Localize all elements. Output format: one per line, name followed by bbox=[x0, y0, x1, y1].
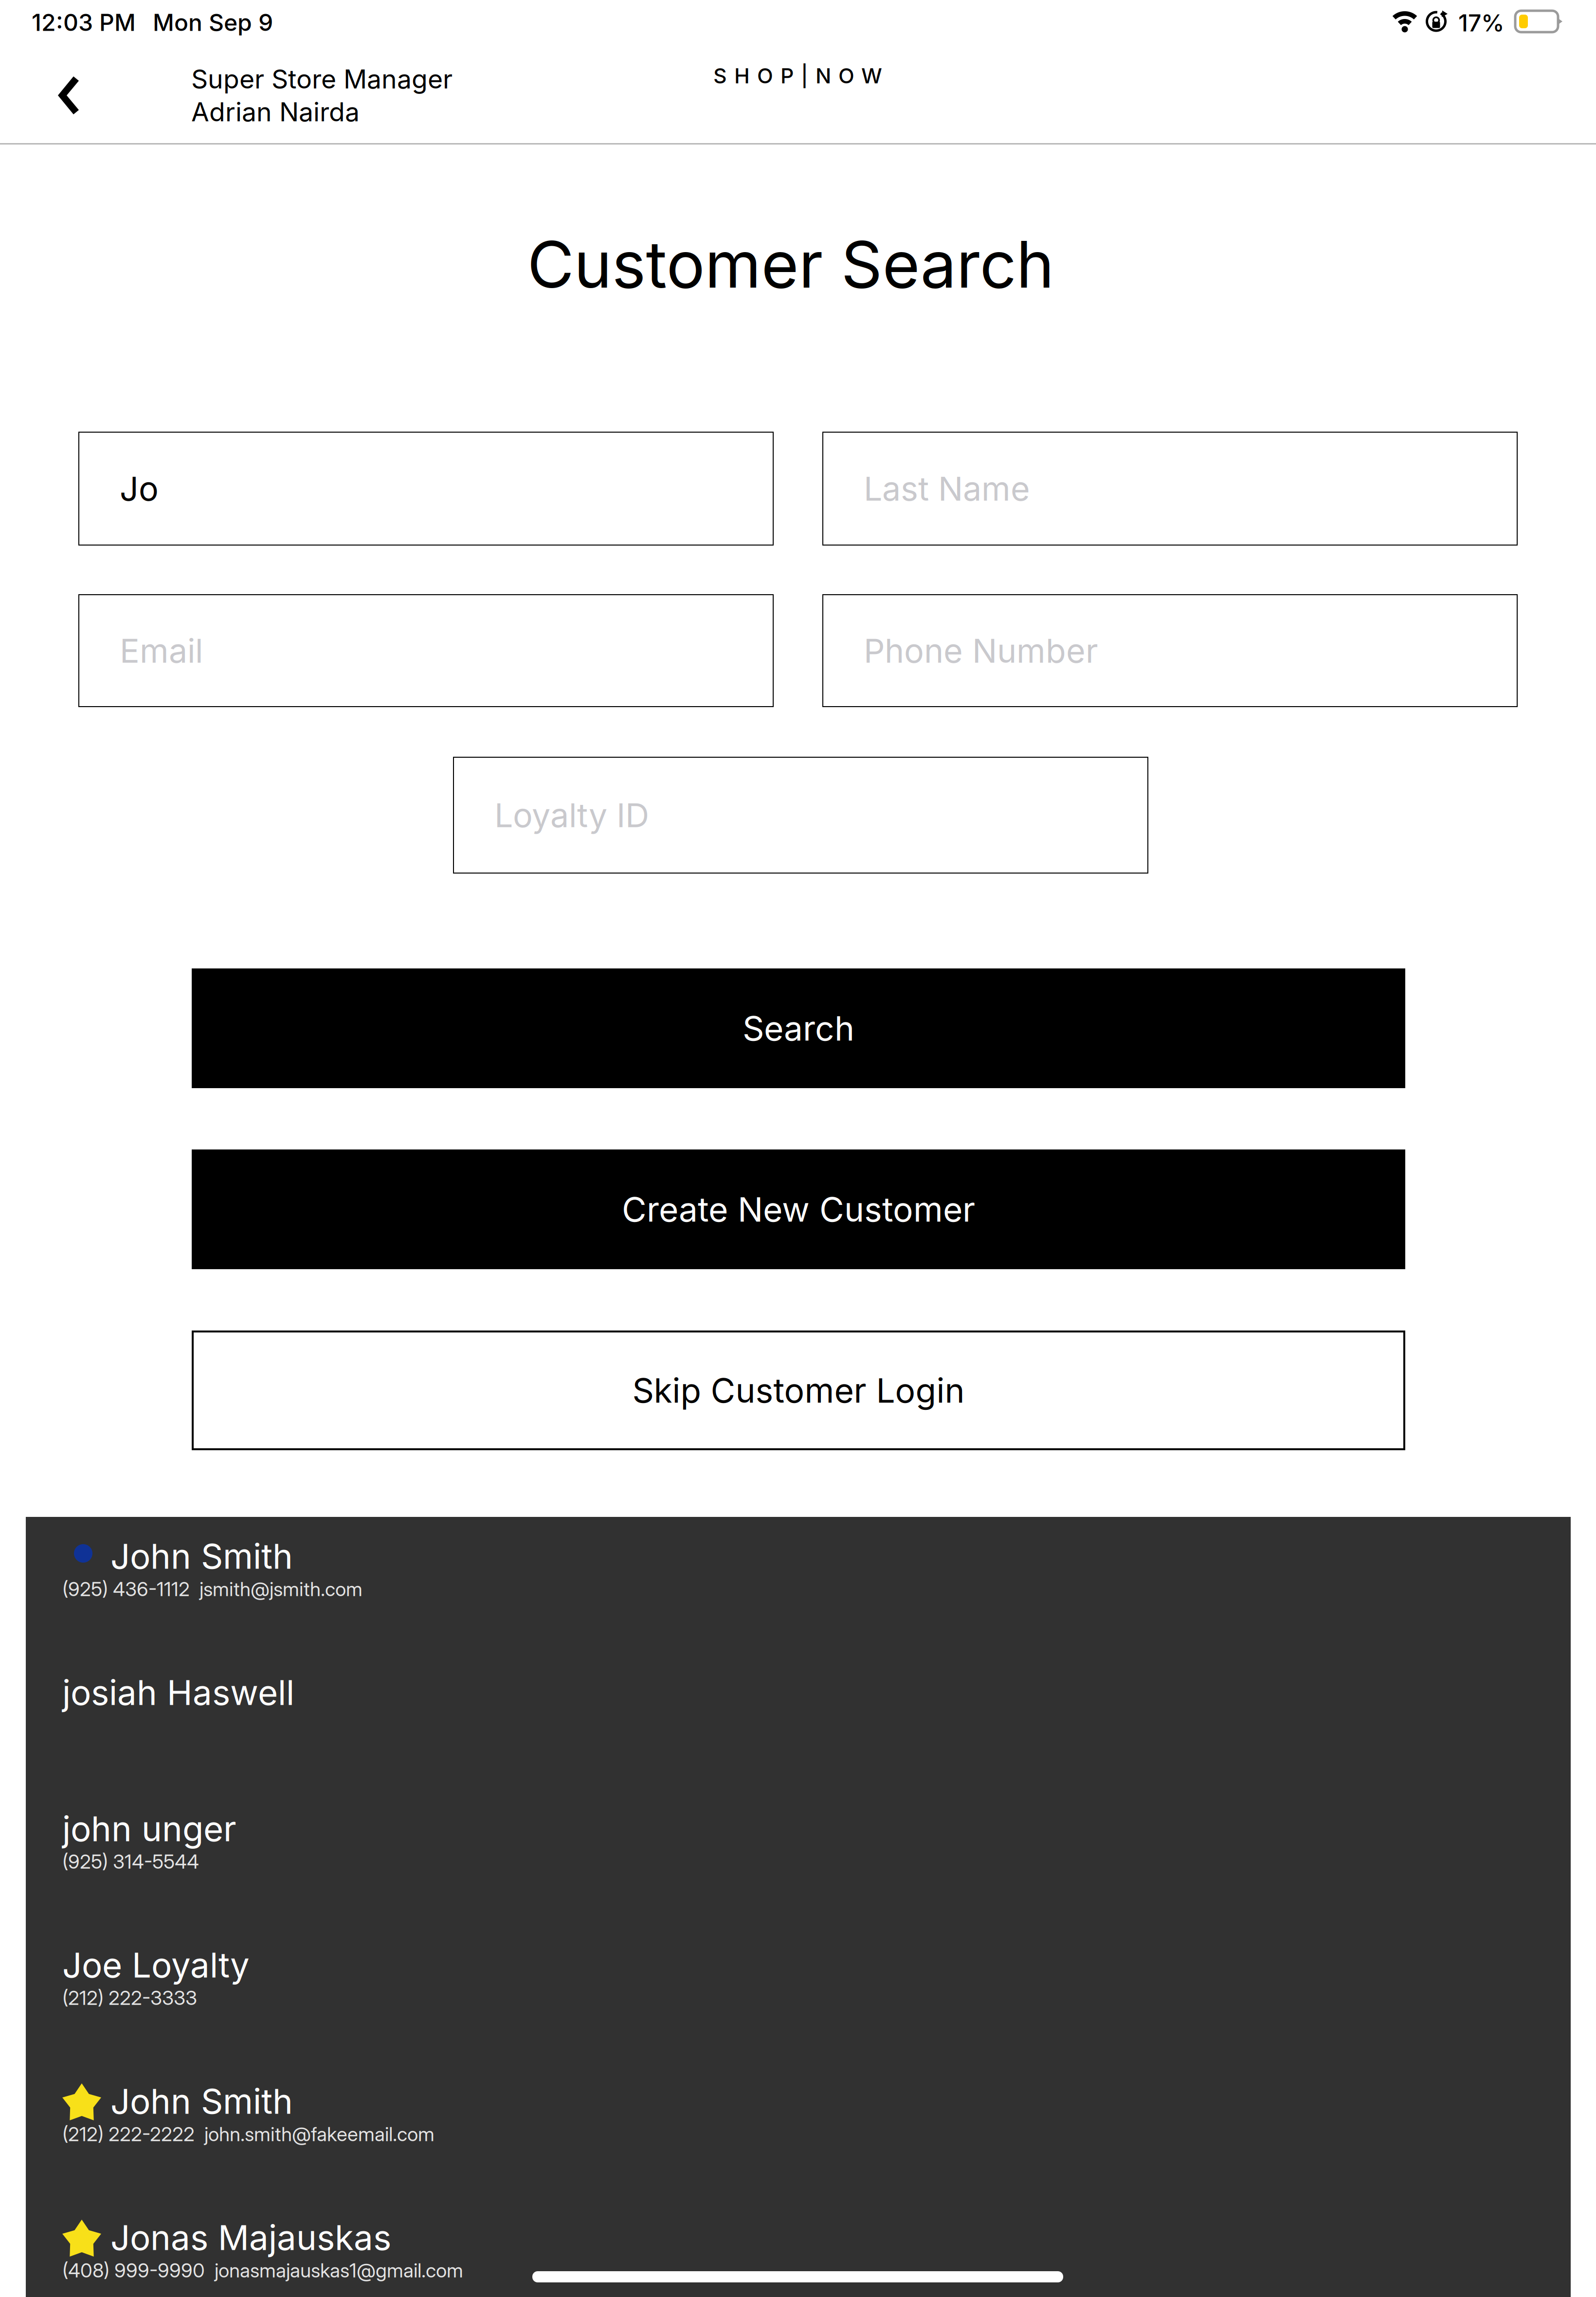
staticText: (925) 314-5544 bbox=[62, 1850, 199, 1873]
button[interactable]: john unger bbox=[26, 1808, 1571, 1944]
button[interactable]: Last Name bbox=[823, 432, 1517, 545]
staticText: Customer Search bbox=[527, 225, 1054, 303]
staticText: 17% bbox=[1458, 9, 1505, 37]
staticText: John Smith bbox=[110, 1535, 293, 1577]
staticText: Jonas Majauskas bbox=[110, 2217, 391, 2258]
button[interactable]: Loyalty ID bbox=[453, 757, 1148, 873]
staticText: 12:03 PM bbox=[32, 8, 136, 37]
staticText: SHOP|NOW bbox=[713, 63, 882, 88]
button[interactable]: Joe Loyalty bbox=[26, 1944, 1571, 2080]
button[interactable]: Search bbox=[192, 968, 1405, 1088]
staticText: Phone Number bbox=[864, 631, 1098, 671]
staticText: josiah Haswell bbox=[62, 1672, 294, 1713]
staticText: Search bbox=[743, 1008, 854, 1049]
staticText: Jo bbox=[120, 469, 159, 509]
staticText: john unger bbox=[62, 1808, 236, 1850]
staticText: Last Name bbox=[864, 469, 1030, 509]
button[interactable]: Email bbox=[79, 595, 773, 707]
staticText: Joe Loyalty bbox=[62, 1944, 250, 1986]
staticText: Loyalty ID bbox=[494, 795, 649, 835]
staticText: Super Store Manager bbox=[191, 63, 453, 95]
staticText: Create New Customer bbox=[622, 1189, 975, 1230]
staticText: (925) 436-1112 jsmith@jsmith.com bbox=[62, 1577, 363, 1601]
button[interactable]: Skip Customer Login bbox=[193, 1331, 1404, 1449]
button[interactable]: Back bbox=[58, 76, 79, 114]
button[interactable]: John Smith bbox=[26, 2080, 1571, 2217]
staticText: (212) 222-3333 bbox=[62, 1986, 197, 2010]
button[interactable]: Super Store Manager bbox=[191, 63, 453, 128]
staticText: (408) 999-9990 jonasmajauskas1@gmail.com bbox=[62, 2259, 463, 2282]
staticText: Skip Customer Login bbox=[632, 1370, 965, 1411]
staticText: Email bbox=[120, 631, 203, 671]
button[interactable]: Create New Customer bbox=[192, 1149, 1405, 1269]
staticText: Mon Sep 9 bbox=[153, 8, 273, 37]
staticText: (212) 222-2222 john.smith@fakeemail.com bbox=[62, 2122, 435, 2146]
button[interactable]: Phone Number bbox=[823, 595, 1517, 707]
button[interactable]: Jonas Majauskas bbox=[26, 2217, 1571, 2297]
button[interactable]: josiah Haswell bbox=[26, 1672, 1571, 1808]
staticText: John Smith bbox=[110, 2080, 293, 2122]
button[interactable]: John Smith bbox=[26, 1535, 1571, 1672]
staticText: Adrian Nairda bbox=[191, 96, 360, 128]
button[interactable]: Jo bbox=[79, 432, 773, 545]
